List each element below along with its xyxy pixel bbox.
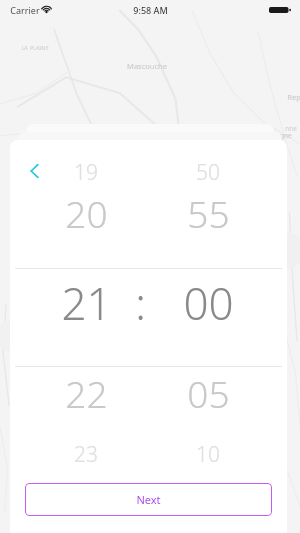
button[interactable]: Next bbox=[25, 483, 272, 516]
button[interactable]: 22 bbox=[10, 368, 287, 418]
staticText: 22 bbox=[65, 368, 108, 418]
staticText: Carrier bbox=[10, 4, 40, 16]
button[interactable]: 19 bbox=[10, 158, 287, 187]
button[interactable]: 21 bbox=[10, 273, 287, 333]
staticText: 10 bbox=[196, 440, 220, 469]
button[interactable]: Back bbox=[18, 154, 52, 188]
staticText: 20 bbox=[65, 188, 108, 238]
staticText: Rep bbox=[287, 92, 300, 102]
staticText: : bbox=[135, 273, 146, 333]
staticText: Next bbox=[136, 492, 161, 507]
button[interactable]: 23 bbox=[10, 440, 287, 469]
staticText: 55 bbox=[187, 188, 230, 238]
staticText: 19 bbox=[74, 158, 98, 187]
staticText: LA PLAINE bbox=[21, 44, 49, 51]
staticText: nne bbox=[285, 124, 297, 133]
staticText: 00 bbox=[183, 273, 234, 333]
staticText: agne bbox=[276, 131, 292, 140]
staticText: 05 bbox=[187, 368, 230, 418]
button[interactable]: 20 bbox=[10, 188, 287, 238]
staticText: 23 bbox=[74, 440, 98, 469]
staticText: 50 bbox=[196, 158, 220, 187]
staticText: 9:58 AM bbox=[133, 4, 168, 16]
staticText: Mascouche bbox=[127, 61, 167, 71]
staticText: 21 bbox=[61, 273, 112, 333]
